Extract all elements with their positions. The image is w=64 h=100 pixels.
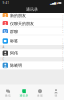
staticText: # bbox=[62, 68, 63, 70]
button[interactable]: 发现 bbox=[32, 87, 48, 97]
button[interactable]: 通讯录 bbox=[16, 87, 32, 97]
staticText: 仅聊天的朋友 bbox=[10, 21, 34, 26]
staticText: 标签 bbox=[10, 38, 18, 43]
staticText: 新的朋友 bbox=[10, 13, 26, 18]
button[interactable]: 我 bbox=[48, 87, 64, 97]
button[interactable]: 群聊 bbox=[0, 29, 64, 37]
staticText: ▂▄▆ bbox=[50, 1, 56, 4]
button[interactable]: 新的朋友 bbox=[0, 13, 64, 21]
staticText: 9:41 bbox=[3, 1, 10, 5]
staticText: 我 bbox=[54, 94, 57, 97]
staticText: D bbox=[62, 23, 63, 25]
button[interactable]: 微信 bbox=[0, 87, 16, 97]
staticText: N bbox=[62, 44, 63, 46]
button[interactable]: 陈晓明 bbox=[0, 61, 64, 69]
staticText: 通讯录 bbox=[26, 7, 38, 12]
staticText: 发现 bbox=[37, 94, 43, 97]
staticText: ◗ bbox=[57, 1, 58, 4]
staticText: 微信 bbox=[5, 94, 11, 97]
button[interactable]: 仅聊天的朋友 bbox=[0, 21, 64, 29]
button[interactable]: 阿伟 bbox=[0, 49, 64, 57]
button[interactable]: 标签 bbox=[0, 37, 64, 45]
staticText: 通讯录 bbox=[19, 94, 28, 97]
staticText: A bbox=[3, 45, 5, 49]
staticText: A bbox=[62, 17, 63, 19]
staticText: C bbox=[3, 57, 5, 61]
staticText: 陈晓明 bbox=[10, 63, 22, 68]
staticText: H bbox=[62, 32, 63, 33]
staticText: 群聊 bbox=[10, 29, 18, 34]
staticText: 阿伟 bbox=[10, 51, 18, 56]
staticText: R bbox=[62, 53, 63, 55]
staticText: M bbox=[62, 42, 63, 44]
staticText: W bbox=[62, 59, 63, 61]
staticText: E bbox=[62, 25, 63, 27]
